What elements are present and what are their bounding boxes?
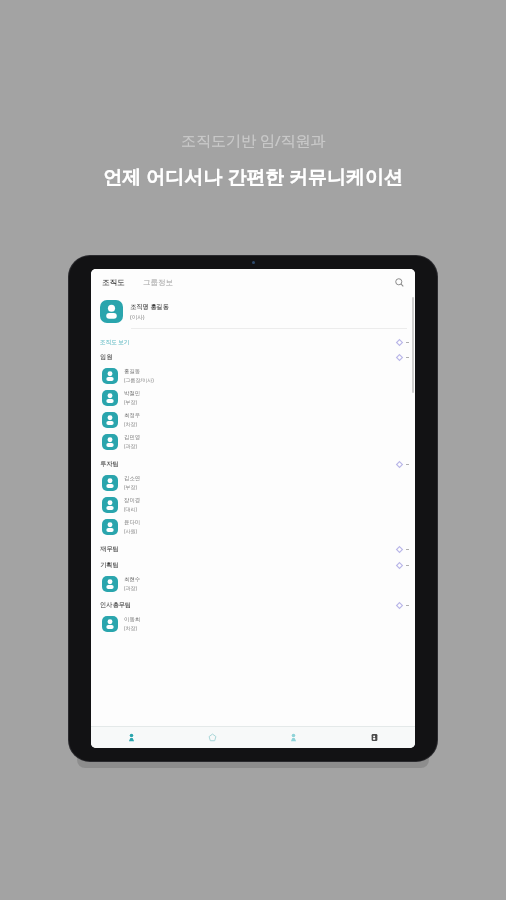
staticText: 최현수: [124, 576, 141, 583]
staticText: 박철민: [124, 390, 141, 397]
staticText: 그룹정보: [143, 278, 173, 287]
staticText: 이동희: [124, 616, 141, 623]
staticText: 김민영: [124, 434, 141, 441]
staticText: 재무팀: [100, 545, 119, 553]
button[interactable]: Search: [391, 274, 407, 290]
staticText: 조직도: [102, 278, 125, 287]
button[interactable]: Home: [172, 726, 253, 748]
button[interactable]: 재무팀: [91, 541, 415, 557]
button[interactable]: Contacts: [91, 726, 172, 748]
staticText: 조직도 보기: [100, 338, 130, 346]
staticText: (차장): [124, 625, 138, 632]
staticText: (사원): [124, 528, 138, 535]
staticText: (이사): [130, 313, 145, 321]
button[interactable]: 홍길동: [91, 365, 415, 387]
staticText: 최정우: [124, 412, 141, 419]
button[interactable]: Card: [334, 726, 415, 748]
staticText: 임원: [100, 353, 113, 361]
button[interactable]: 박철민: [91, 387, 415, 409]
staticText: 김소연: [124, 475, 141, 482]
button[interactable]: 김소연: [91, 472, 415, 494]
staticText: 장미경: [124, 497, 141, 504]
staticText: (부장): [124, 399, 138, 406]
staticText: (차장): [124, 421, 138, 428]
button[interactable]: 조직도 보기: [91, 336, 415, 349]
staticText: 투자팀: [100, 460, 119, 468]
button[interactable]: 그룹정보: [141, 275, 175, 290]
staticText: (과장): [124, 585, 138, 592]
staticText: 홍길동: [124, 368, 141, 375]
staticText: (과장): [124, 443, 138, 450]
button[interactable]: 투자팀: [91, 456, 415, 472]
button[interactable]: 조직명 홍길동: [91, 295, 415, 328]
button[interactable]: Profile: [253, 726, 334, 748]
staticText: (부장): [124, 484, 138, 491]
staticText: 기획팀: [100, 561, 119, 569]
staticText: 윤다미: [124, 519, 141, 526]
button[interactable]: 기획팀: [91, 557, 415, 573]
staticText: (그룹장/이사): [124, 377, 154, 384]
staticText: 언제 어디서나 간편한 커뮤니케이션: [103, 164, 403, 190]
button[interactable]: 장미경: [91, 494, 415, 516]
button[interactable]: 임원: [91, 349, 415, 365]
button[interactable]: 인사총무팀: [91, 597, 415, 613]
staticText: 조직도기반 임/직원과: [181, 130, 326, 150]
staticText: 인사총무팀: [100, 601, 131, 609]
button[interactable]: 최정우: [91, 409, 415, 431]
staticText: (대리): [124, 506, 138, 513]
button[interactable]: 최현수: [91, 573, 415, 595]
button[interactable]: 조직도: [100, 275, 127, 290]
button[interactable]: 김민영: [91, 431, 415, 453]
button[interactable]: 이동희: [91, 613, 415, 635]
staticText: 조직명 홍길동: [130, 302, 169, 310]
button[interactable]: 윤다미: [91, 516, 415, 538]
